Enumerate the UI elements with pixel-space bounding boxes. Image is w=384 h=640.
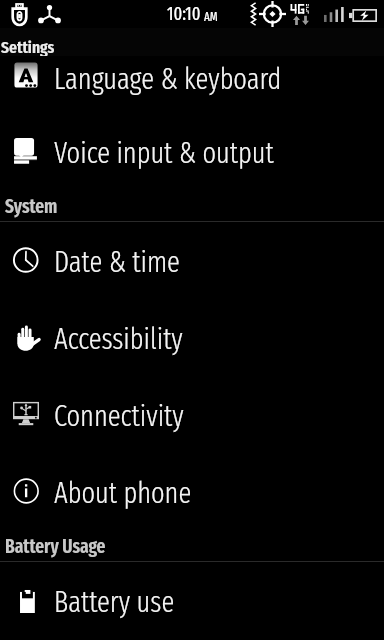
button[interactable]: Voice input & output [0, 113, 384, 190]
button[interactable]: Battery use [0, 562, 384, 639]
staticText: Battery Usage [5, 535, 106, 558]
staticText: 10:10 [167, 3, 201, 25]
staticText: Connectivity [54, 399, 184, 434]
staticText: Language & keyboard [54, 62, 282, 97]
button[interactable]: Language & keyboard [0, 56, 384, 113]
staticText: Voice input & output [54, 136, 274, 171]
staticText: System [5, 195, 58, 218]
staticText: Accessibility [54, 322, 183, 357]
staticText: Settings [1, 37, 55, 56]
button[interactable]: About phone [0, 453, 384, 530]
staticText: Battery use [54, 585, 175, 620]
staticText: Date & time [54, 245, 180, 280]
button[interactable]: Accessibility [0, 299, 384, 376]
button[interactable]: Connectivity [0, 376, 384, 453]
staticText: AM [204, 10, 218, 24]
staticText: About phone [54, 476, 192, 511]
button[interactable]: Date & time [0, 222, 384, 299]
